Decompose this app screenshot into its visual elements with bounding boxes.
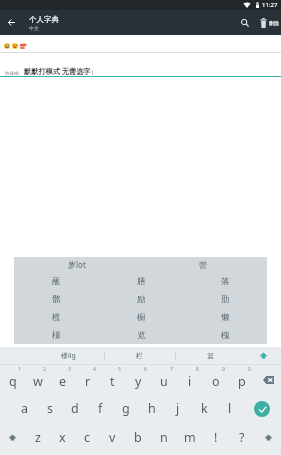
button[interactable]: Enter	[243, 394, 281, 423]
staticText: u	[160, 373, 168, 390]
staticText: x	[59, 429, 66, 446]
staticText: 橿	[52, 330, 61, 341]
button[interactable]: 1	[0, 365, 25, 394]
button[interactable]: k	[191, 394, 217, 423]
staticText: 6	[144, 366, 147, 373]
button[interactable]: 删除	[269, 10, 279, 35]
button[interactable]: 9	[203, 365, 229, 394]
staticText: 7	[170, 366, 173, 373]
staticText: i	[188, 373, 192, 390]
button[interactable]: 篮	[175, 347, 246, 364]
staticText: 肋	[221, 294, 230, 305]
staticText: 个人字典	[29, 15, 59, 24]
button[interactable]: j	[165, 394, 191, 423]
button[interactable]: a	[12, 394, 37, 423]
button[interactable]: Back	[0, 10, 23, 35]
staticText: d	[71, 400, 79, 417]
staticText: a	[21, 400, 29, 417]
button[interactable]: Backspace	[255, 365, 281, 394]
button[interactable]: v	[100, 423, 125, 452]
button[interactable]: 2	[25, 365, 50, 394]
staticText: 励	[137, 294, 146, 305]
button[interactable]: 肋	[183, 290, 267, 308]
staticText: 删除	[269, 20, 279, 26]
staticText: h	[148, 400, 156, 417]
button[interactable]: f	[87, 394, 113, 423]
button[interactable]: 4	[75, 365, 100, 394]
button[interactable]: 橱	[99, 308, 183, 326]
staticText: 槐	[221, 330, 230, 341]
staticText: 榄	[52, 312, 61, 323]
button[interactable]: 励	[99, 290, 183, 308]
button[interactable]: c	[75, 423, 100, 452]
button[interactable]: 槐	[183, 326, 267, 344]
button[interactable]: 橿	[14, 326, 99, 344]
staticText: z	[35, 429, 41, 446]
button[interactable]: 營	[199, 260, 207, 270]
staticText: 蘸	[52, 276, 61, 287]
button[interactable]: 8	[177, 365, 203, 394]
staticText: 骼	[52, 294, 61, 305]
button[interactable]: d	[62, 394, 87, 423]
button[interactable]: 览	[99, 326, 183, 344]
button[interactable]: z	[25, 423, 50, 452]
button[interactable]: b	[125, 423, 151, 452]
staticText: c	[84, 429, 91, 446]
button[interactable]: Shift	[0, 423, 25, 452]
button[interactable]: Expand candidates	[246, 347, 281, 364]
staticText: 篮	[207, 351, 214, 360]
button[interactable]: Hundred	[20, 43, 26, 49]
button[interactable]: 萝lot	[68, 259, 86, 270]
staticText: f	[98, 400, 103, 417]
staticText: 落	[221, 276, 230, 287]
staticText: q	[9, 373, 17, 390]
staticText: ?	[239, 429, 245, 446]
staticText: w	[33, 373, 43, 390]
staticText: 膳	[137, 276, 146, 287]
button[interactable]: 落	[183, 272, 267, 290]
button[interactable]: 蘸	[14, 272, 99, 290]
button[interactable]: n	[151, 423, 177, 452]
button[interactable]: h	[139, 394, 165, 423]
staticText: |	[91, 69, 94, 76]
button[interactable]: l	[217, 394, 243, 423]
staticText: k	[201, 400, 208, 417]
button[interactable]: g	[113, 394, 139, 423]
staticText: 1	[18, 366, 21, 373]
button[interactable]: m	[177, 423, 203, 452]
button[interactable]: 懒	[183, 308, 267, 326]
staticText: 楼llg	[61, 351, 76, 361]
button[interactable]: Search	[233, 10, 257, 35]
button[interactable]: 5	[100, 365, 125, 394]
button[interactable]: ?	[229, 423, 255, 452]
staticText: g	[122, 400, 130, 417]
staticText: 2	[43, 366, 46, 373]
staticText: 3	[68, 366, 71, 373]
button[interactable]: 骼	[14, 290, 99, 308]
button[interactable]: 3	[50, 365, 75, 394]
button[interactable]: Shift	[255, 423, 281, 452]
button[interactable]: 楼llg	[32, 347, 104, 364]
button[interactable]: s	[37, 394, 62, 423]
button[interactable]: !	[203, 423, 229, 452]
staticText: 萝lot	[68, 259, 86, 270]
staticText: 栏	[136, 351, 143, 360]
button[interactable]: Emoji	[12, 43, 18, 49]
staticText: 4	[93, 366, 96, 373]
staticText: o	[212, 373, 220, 390]
button[interactable]: 7	[151, 365, 177, 394]
button[interactable]: 榄	[14, 308, 99, 326]
staticText: 懒	[221, 312, 230, 323]
staticText: 11:27	[262, 1, 278, 9]
button[interactable]: Emoji	[4, 43, 10, 49]
button[interactable]: 膳	[99, 272, 183, 290]
button[interactable]: 栏	[104, 347, 175, 364]
button[interactable]: 6	[125, 365, 151, 394]
button[interactable]: 0	[229, 365, 255, 394]
button[interactable]: x	[50, 423, 75, 452]
button[interactable]: Delete	[257, 10, 269, 35]
staticText: 览	[137, 330, 146, 341]
staticText: j	[176, 400, 180, 417]
